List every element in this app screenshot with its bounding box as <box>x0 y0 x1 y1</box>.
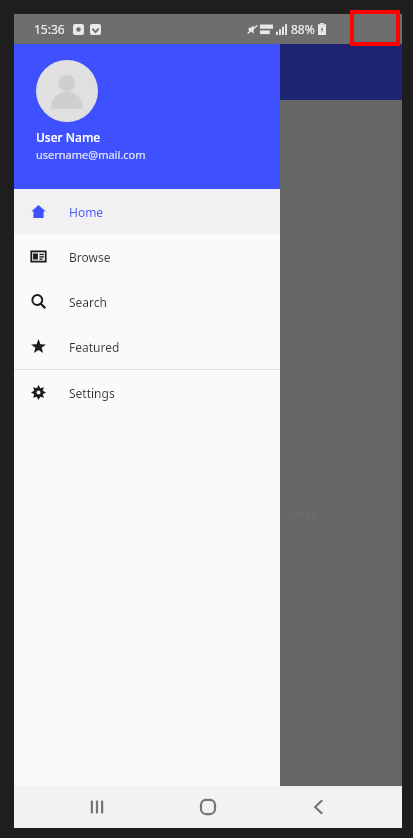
staticText: username@mail.com <box>36 147 146 162</box>
button[interactable]: Home <box>14 189 280 234</box>
staticText: Home <box>69 204 104 220</box>
staticText: Featured <box>69 339 120 355</box>
staticText: 88% <box>291 21 315 37</box>
staticText: Browse <box>69 249 111 265</box>
button[interactable]: Browse <box>14 234 280 279</box>
button[interactable]: Settings <box>14 370 280 415</box>
button[interactable]: Home <box>180 786 236 828</box>
button[interactable]: Recent apps <box>69 786 125 828</box>
staticText: Search <box>69 294 107 310</box>
staticText: Settings <box>69 385 115 401</box>
staticText: <-- swipe --> <box>272 506 335 521</box>
button[interactable]: Featured <box>14 324 280 369</box>
staticText: 15:36 <box>34 21 65 37</box>
staticText: User Name <box>36 129 101 145</box>
button[interactable]: Search <box>14 279 280 324</box>
button[interactable]: Back <box>291 786 347 828</box>
